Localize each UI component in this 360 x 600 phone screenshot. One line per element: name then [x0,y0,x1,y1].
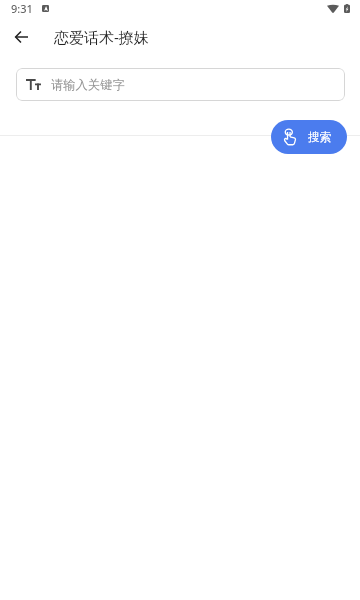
staticText: 恋爱话术-撩妹 [54,27,149,47]
button[interactable]: Back [6,22,36,52]
staticText: 搜索 [308,130,332,145]
button[interactable]: 请输入关键字 [16,68,345,101]
staticText: 请输入关键字 [51,77,125,92]
button[interactable]: 搜索 [271,120,347,154]
staticText: 9:31 [11,1,33,16]
